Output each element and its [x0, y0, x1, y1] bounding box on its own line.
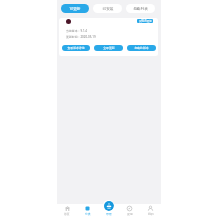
button[interactable]: 忽略列表: [126, 4, 155, 13]
button[interactable]: 立即更新: [94, 45, 123, 51]
staticText: 立即更新: [103, 46, 115, 50]
button[interactable]: 仅WiFi更新: [137, 19, 153, 23]
staticText: 分类: [85, 212, 91, 216]
button[interactable]: 已安装: [93, 4, 122, 13]
staticText: 查看版本详情: [67, 46, 85, 50]
staticText: 更新时间：2020-05-19: [66, 35, 96, 39]
staticText: 当前版本：9.1.4: [66, 29, 87, 33]
button[interactable]: 忽略此版本: [127, 45, 156, 51]
staticText: 首页: [64, 212, 70, 216]
button[interactable]: 首页: [57, 200, 77, 217]
staticText: 可更新: [69, 6, 81, 11]
button[interactable]: 我的: [140, 200, 161, 217]
staticText: 仅WiFi更新: [139, 19, 152, 23]
button[interactable]: 管理: [98, 200, 119, 217]
staticText: 忽略列表: [133, 6, 148, 11]
button[interactable]: 查看版本详情: [62, 45, 90, 51]
button[interactable]: 仅WiFi更新: [59, 18, 158, 56]
staticText: 我的: [148, 212, 154, 216]
button[interactable]: 分类: [77, 200, 98, 217]
staticText: 发现: [127, 212, 133, 216]
staticText: 忽略此版本: [134, 46, 149, 50]
button[interactable]: 发现: [119, 200, 140, 217]
button[interactable]: 可更新: [61, 4, 89, 13]
staticText: 管理: [106, 212, 112, 216]
staticText: 已安装: [102, 6, 114, 11]
